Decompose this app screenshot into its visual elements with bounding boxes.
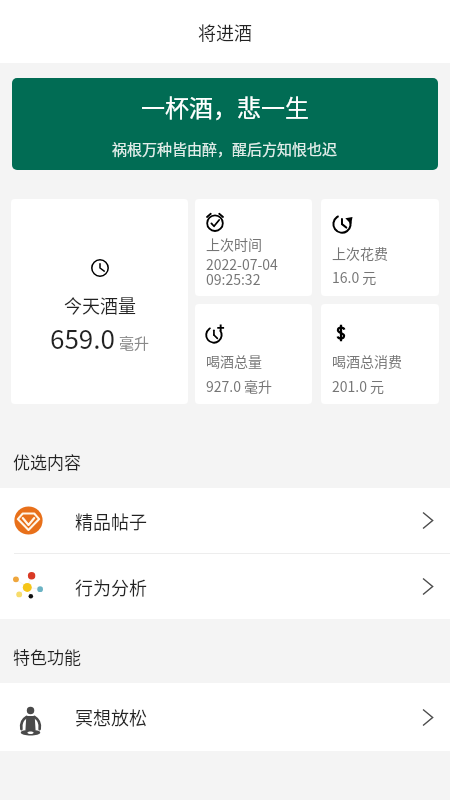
staticText: 冥想放松	[75, 704, 147, 730]
staticText: 特色功能	[13, 644, 81, 669]
button[interactable]: 喝酒总消费	[321, 304, 439, 404]
staticText: 将进酒	[198, 19, 252, 45]
button[interactable]: 精品帖子	[0, 488, 450, 553]
staticText: 上次花费	[332, 243, 388, 263]
button[interactable]: 上次时间	[195, 199, 312, 296]
staticText: 一杯酒，悲一生	[141, 89, 309, 124]
staticText: 喝酒总量	[206, 351, 262, 371]
button[interactable]: 喝酒总量	[195, 304, 312, 404]
staticText: 今天酒量	[64, 292, 136, 318]
staticText: 精品帖子	[75, 508, 147, 534]
staticText: 659.0	[50, 319, 115, 357]
button[interactable]: 冥想放松	[0, 683, 450, 751]
button[interactable]: 一杯酒，悲一生	[12, 78, 438, 170]
staticText: 优选内容	[13, 449, 81, 474]
staticText: 祸根万种皆由醉，醒后方知恨也迟	[112, 138, 338, 160]
staticText: 927.0 毫升	[206, 376, 273, 396]
staticText: 2022-07-04 09:25:32	[206, 254, 278, 289]
staticText: 上次时间	[206, 234, 262, 254]
button[interactable]: 今天酒量	[11, 199, 188, 404]
staticText: 行为分析	[75, 574, 147, 600]
staticText: 201.0 元	[332, 376, 385, 396]
staticText: 喝酒总消费	[332, 351, 402, 371]
staticText: 毫升	[119, 332, 150, 354]
button[interactable]: 上次花费	[321, 199, 439, 296]
staticText: 16.0 元	[332, 267, 377, 287]
button[interactable]: 行为分析	[0, 554, 450, 619]
